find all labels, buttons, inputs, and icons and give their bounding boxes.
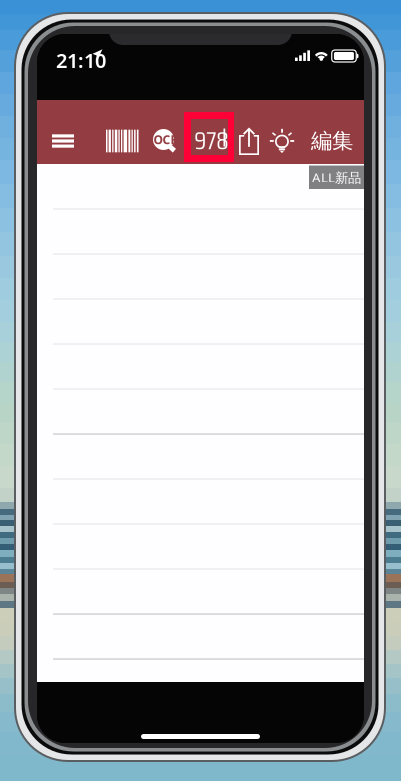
button[interactable]: Menu [43,119,83,163]
button[interactable]: ISBN prefix field, 978 [184,112,234,162]
button[interactable]: Tips [265,119,299,163]
button[interactable]: Share [232,119,266,163]
staticText: 21:10 [56,47,106,74]
button[interactable]: Scan barcode [99,119,145,163]
staticText: OCR [153,131,178,147]
button[interactable]: ALL新品 [309,165,364,189]
button[interactable]: Scan text with OCR [144,119,186,163]
staticText: ALL新品 [312,168,361,186]
staticText: 978 [194,121,228,160]
button[interactable]: 編集 [308,119,356,163]
staticText: 編集 [311,128,353,154]
